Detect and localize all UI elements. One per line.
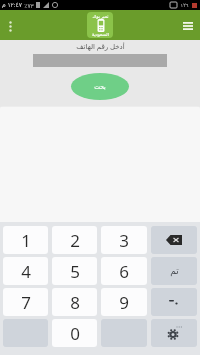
staticText: 2 <box>70 229 80 252</box>
staticText: تم <box>170 266 179 276</box>
staticText: 9 <box>119 291 129 314</box>
staticText: نمبر بوك <box>92 13 109 19</box>
staticText: 7 <box>21 291 31 314</box>
button[interactable]: 8 <box>52 288 97 316</box>
button[interactable]: 9 <box>101 288 147 316</box>
button[interactable]: 1 <box>3 226 48 254</box>
button[interactable]: 6 <box>101 257 147 285</box>
staticText: 3 <box>119 229 129 252</box>
staticText: 1 <box>21 229 31 252</box>
staticText: 0 <box>70 322 80 345</box>
button[interactable] <box>151 226 197 254</box>
staticText: 8 <box>70 291 80 314</box>
button[interactable]: 2 <box>52 226 97 254</box>
staticText: بحث <box>94 83 106 90</box>
button[interactable]: 4 <box>3 257 48 285</box>
button[interactable]: تم <box>151 257 197 285</box>
button[interactable] <box>151 319 197 347</box>
staticText: 5 <box>70 260 80 283</box>
staticText: 6 <box>119 260 129 283</box>
button[interactable]: بحث <box>71 73 129 100</box>
button[interactable] <box>151 288 197 316</box>
staticText: أدخل رقم الهاتف <box>76 42 125 52</box>
button[interactable]: 5 <box>52 257 97 285</box>
staticText: السعودية <box>92 32 109 37</box>
button[interactable]: 3 <box>101 226 147 254</box>
button[interactable]: نمبر بوك <box>87 12 113 38</box>
staticText: ٪٧٣ <box>24 2 34 9</box>
button[interactable]: 7 <box>3 288 48 316</box>
staticText: 4 <box>21 260 31 283</box>
staticText: ١٢:٤٧ م <box>2 1 22 9</box>
staticText: ١٢٦ <box>180 2 189 8</box>
button[interactable]: 0 <box>52 319 97 347</box>
